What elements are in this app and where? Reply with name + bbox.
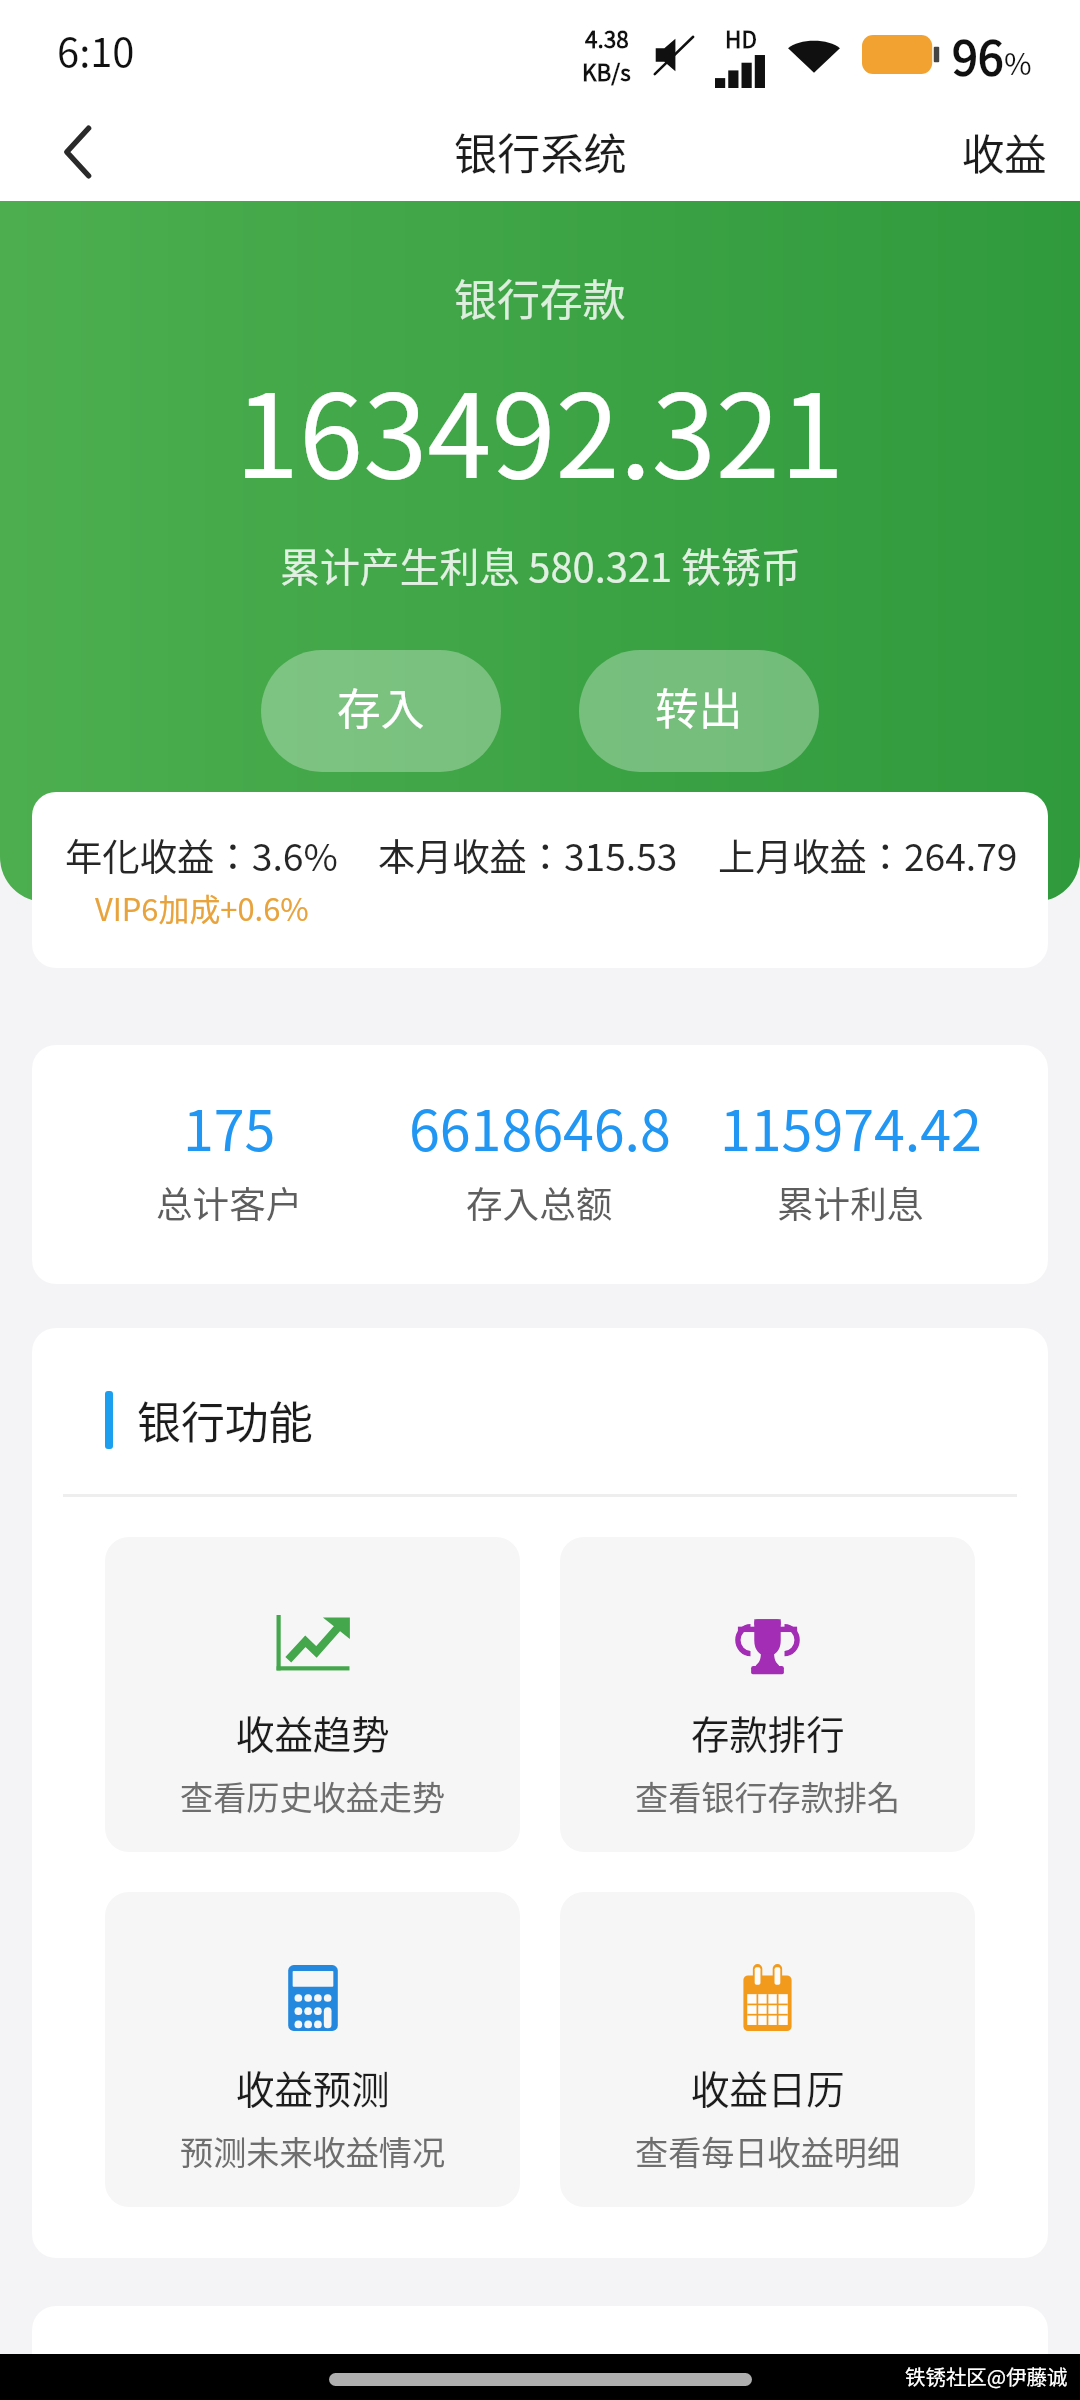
button[interactable]: Back [0, 102, 156, 201]
staticText: 银行存款 [454, 266, 626, 328]
staticText: 收益趋势 [236, 1704, 390, 1760]
staticText: 115974.42 [720, 1087, 982, 1167]
staticText: 查看每日收益明细 [635, 2127, 901, 2175]
button[interactable]: 收益日历 [560, 1892, 975, 2207]
staticText: 银行系统 [454, 120, 627, 183]
staticText: 存入总额 [466, 1176, 613, 1229]
staticText: 收益日历 [691, 2059, 845, 2115]
button[interactable]: 转出 [579, 650, 819, 772]
staticText: 收益预测 [236, 2059, 390, 2115]
staticText: 6:10 [57, 21, 135, 79]
staticText: 银行功能 [137, 1388, 313, 1452]
staticText: 存入 [337, 674, 425, 737]
staticText: 163492.321 [235, 344, 845, 511]
staticText: HD [725, 22, 757, 55]
staticText: 累计利息 [777, 1176, 924, 1229]
button[interactable]: 收益趋势 [105, 1537, 520, 1852]
button[interactable]: 存入 [261, 650, 501, 772]
staticText: 铁锈社区@伊藤诚 [905, 2361, 1068, 2391]
staticText: 总计客户 [156, 1176, 303, 1229]
staticText: 本月收益：315.53 [378, 828, 678, 882]
staticText: 收益 [962, 121, 1047, 182]
staticText: 4.38 [585, 22, 629, 55]
staticText: 转出 [655, 674, 743, 737]
staticText: 年化收益：3.6% [65, 828, 338, 882]
staticText: % [1004, 40, 1032, 83]
button[interactable]: 存款排行 [560, 1537, 975, 1852]
staticText: 存款排行 [691, 1704, 845, 1760]
staticText: VIP6加成+0.6% [95, 885, 309, 930]
staticText: 累计产生利息 580.321 铁锈币 [280, 536, 801, 594]
staticText: 预测未来收益情况 [180, 2127, 446, 2175]
staticText: 上月收益：264.79 [718, 828, 1018, 882]
button[interactable]: 收益 [926, 109, 1080, 194]
staticText: 查看银行存款排名 [635, 1772, 901, 1820]
staticText: 175 [183, 1087, 276, 1167]
button[interactable]: 收益预测 [105, 1892, 520, 2207]
staticText: 96 [952, 21, 1004, 88]
staticText: 6618646.8 [409, 1087, 671, 1167]
staticText: 查看历史收益走势 [180, 1772, 446, 1820]
staticText: KB/s [582, 55, 631, 88]
